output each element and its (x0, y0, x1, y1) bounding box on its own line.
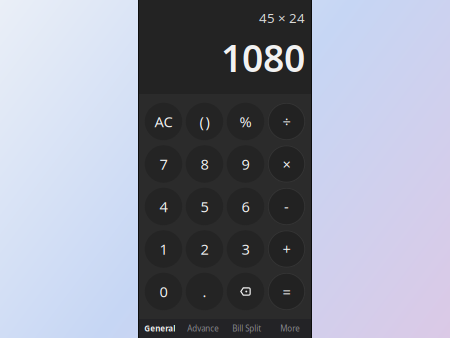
staticText: 2 (200, 239, 208, 259)
button[interactable]: 5 (186, 188, 223, 225)
staticText: × (282, 154, 290, 174)
button[interactable]: ( ) (186, 103, 223, 140)
staticText: Bill Split (232, 323, 261, 334)
button[interactable]: % (227, 103, 264, 140)
button[interactable]: AC (145, 103, 182, 140)
button[interactable]: Advance (181, 319, 225, 338)
staticText: % (239, 112, 251, 131)
staticText: 1 (159, 239, 167, 259)
staticText: . (202, 282, 206, 301)
staticText: 1080 (221, 33, 305, 82)
staticText: AC (154, 112, 172, 131)
button[interactable]: × (268, 145, 305, 183)
button[interactable]: Bill Split (225, 319, 268, 338)
button[interactable]: 1 (145, 230, 182, 268)
staticText: 7 (159, 154, 167, 174)
staticText: General (144, 323, 175, 334)
button[interactable]: Delete (227, 273, 264, 310)
button[interactable]: = (268, 273, 305, 310)
button[interactable]: 4 (145, 188, 182, 225)
staticText: 4 (159, 197, 167, 216)
button[interactable]: 9 (227, 145, 264, 183)
staticText: 8 (200, 154, 208, 174)
staticText: ( ) (199, 112, 209, 131)
button[interactable]: More (268, 319, 312, 338)
button[interactable]: + (268, 230, 305, 268)
button[interactable]: . (186, 273, 223, 310)
button[interactable]: 3 (227, 230, 264, 268)
staticText: ÷ (282, 112, 290, 131)
staticText: 0 (159, 282, 167, 301)
staticText: Advance (187, 323, 219, 334)
staticText: = (282, 282, 290, 301)
button[interactable]: ÷ (268, 103, 305, 140)
staticText: 5 (200, 197, 208, 216)
button[interactable]: - (268, 188, 305, 225)
button[interactable]: General (138, 319, 181, 338)
button[interactable]: 2 (186, 230, 223, 268)
staticText: + (282, 239, 290, 259)
staticText: - (284, 197, 289, 216)
staticText: 9 (241, 154, 249, 174)
staticText: 6 (241, 197, 249, 216)
staticText: 3 (241, 239, 249, 259)
button[interactable]: 8 (186, 145, 223, 183)
button[interactable]: 6 (227, 188, 264, 225)
staticText: More (280, 323, 300, 334)
staticText: 45 × 24 (259, 9, 305, 27)
button[interactable]: 7 (145, 145, 182, 183)
button[interactable]: 0 (145, 273, 182, 310)
